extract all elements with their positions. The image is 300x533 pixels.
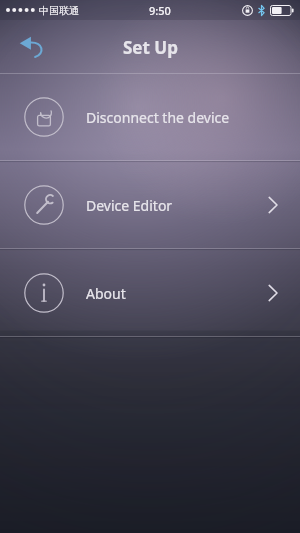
button[interactable]: Device Editor bbox=[0, 162, 300, 248]
staticText: 9:50 bbox=[149, 3, 171, 18]
staticText: Device Editor bbox=[86, 196, 173, 215]
button[interactable]: Back bbox=[10, 25, 54, 69]
staticText: About bbox=[86, 284, 126, 303]
staticText: 中国联通 bbox=[39, 4, 79, 17]
other: Disconnect bbox=[24, 97, 64, 137]
button[interactable]: About bbox=[0, 250, 300, 336]
staticText: Disconnect the device bbox=[86, 108, 230, 127]
other: About bbox=[24, 273, 64, 313]
button[interactable]: Disconnect bbox=[0, 74, 300, 160]
other: Device Editor bbox=[24, 185, 64, 225]
staticText: Set Up bbox=[123, 36, 178, 59]
